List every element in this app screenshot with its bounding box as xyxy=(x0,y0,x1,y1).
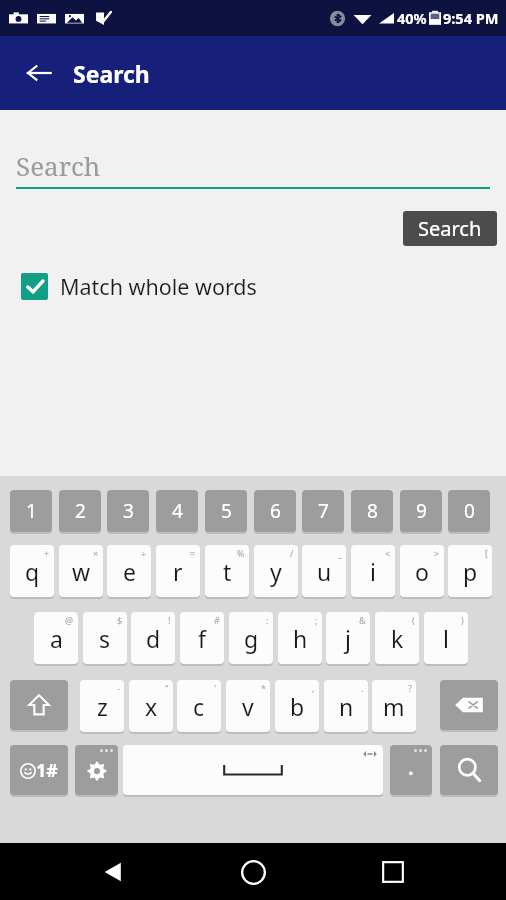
button[interactable]: y xyxy=(254,545,298,597)
button[interactable]: z xyxy=(80,680,124,732)
staticText: × xyxy=(93,547,99,559)
staticText: 7 xyxy=(318,498,329,524)
staticText: m xyxy=(383,691,405,722)
staticText: > xyxy=(434,547,440,559)
button[interactable]: Space xyxy=(123,745,383,795)
staticText: n xyxy=(339,691,354,722)
staticText: f xyxy=(198,623,206,654)
staticText: 40% xyxy=(397,8,427,28)
button[interactable]: d xyxy=(131,612,175,664)
staticText: < xyxy=(385,547,391,559)
staticText: Search xyxy=(418,215,482,242)
staticText: k xyxy=(391,623,404,654)
button[interactable]: Back xyxy=(16,50,62,96)
staticText: % xyxy=(237,547,245,559)
staticText: @ xyxy=(65,614,74,626)
staticText: 9 xyxy=(416,498,427,524)
staticText: = xyxy=(190,547,196,559)
button[interactable]: m xyxy=(372,680,416,732)
button[interactable]: 1 xyxy=(10,490,52,532)
button[interactable]: Home xyxy=(226,845,280,899)
button[interactable]: 2 xyxy=(59,490,101,532)
staticText: b xyxy=(290,691,305,722)
staticText: 8 xyxy=(367,498,378,524)
staticText: " xyxy=(165,682,169,694)
button[interactable]: r xyxy=(156,545,200,597)
staticText: * xyxy=(261,682,266,694)
button[interactable]: Search xyxy=(440,745,498,795)
button[interactable]: l xyxy=(424,612,468,664)
button[interactable]: Back xyxy=(86,845,140,899)
button[interactable]: o xyxy=(400,545,444,597)
button[interactable]: f xyxy=(180,612,224,664)
button[interactable]: 0 xyxy=(448,490,490,532)
staticText: i xyxy=(370,556,376,587)
staticText: 1# xyxy=(36,758,58,783)
button[interactable]: Recents xyxy=(366,845,420,899)
button[interactable]: Backspace xyxy=(440,680,498,730)
button[interactable]: c xyxy=(177,680,221,732)
staticText: x xyxy=(145,691,158,722)
button[interactable]: v xyxy=(226,680,270,732)
staticText: ( xyxy=(412,614,415,626)
button[interactable]: h xyxy=(278,612,322,664)
staticText: ) xyxy=(461,614,464,626)
button[interactable]: Emoji and symbols xyxy=(10,745,68,795)
staticText: e xyxy=(123,556,136,587)
button[interactable]: u xyxy=(302,545,346,597)
button[interactable]: Period xyxy=(390,745,432,795)
button[interactable]: 5 xyxy=(205,490,247,532)
button[interactable]: x xyxy=(129,680,173,732)
button[interactable]: p xyxy=(448,545,492,597)
staticText: 3 xyxy=(123,498,134,524)
staticText: ÷ xyxy=(141,547,147,559)
staticText: 5 xyxy=(221,498,232,524)
staticText: u xyxy=(317,556,332,587)
staticText: 4 xyxy=(172,498,183,524)
button[interactable]: Settings xyxy=(75,745,118,795)
staticText: [ xyxy=(485,547,488,559)
staticText: . xyxy=(361,682,364,694)
staticText: j xyxy=(345,623,351,654)
staticText: + xyxy=(44,547,50,559)
button[interactable]: q xyxy=(10,545,54,597)
button[interactable]: j xyxy=(326,612,370,664)
button[interactable]: k xyxy=(375,612,419,664)
button[interactable]: Search xyxy=(403,211,497,246)
staticText: s xyxy=(99,623,111,654)
button[interactable]: 6 xyxy=(254,490,296,532)
button[interactable]: 7 xyxy=(302,490,344,532)
button[interactable]: Search xyxy=(16,143,490,187)
button[interactable]: 9 xyxy=(400,490,442,532)
button[interactable]: Shift xyxy=(10,680,68,730)
staticText: y xyxy=(270,556,282,587)
staticText: g xyxy=(244,623,259,654)
button[interactable]: s xyxy=(83,612,127,664)
button[interactable]: g xyxy=(229,612,273,664)
staticText: Match whole words xyxy=(60,272,257,301)
staticText: l xyxy=(443,623,449,654)
staticText: 0 xyxy=(464,498,475,524)
staticText: _ xyxy=(338,547,342,559)
button[interactable]: i xyxy=(351,545,395,597)
staticText: c xyxy=(193,691,205,722)
staticText: a xyxy=(50,623,63,654)
staticText: ; xyxy=(315,614,318,626)
staticText: Search xyxy=(73,58,150,89)
button[interactable]: Match whole words xyxy=(21,272,490,301)
button[interactable]: a xyxy=(34,612,78,664)
staticText: ' xyxy=(214,682,217,694)
button[interactable]: t xyxy=(205,545,249,597)
button[interactable]: b xyxy=(275,680,319,732)
staticText: $ xyxy=(117,614,123,626)
button[interactable]: 4 xyxy=(156,490,198,532)
button[interactable]: w xyxy=(59,545,103,597)
button[interactable]: 8 xyxy=(351,490,393,532)
button[interactable]: e xyxy=(107,545,151,597)
staticText: q xyxy=(25,556,40,587)
staticText: r xyxy=(173,556,183,587)
button[interactable]: n xyxy=(324,680,368,732)
button[interactable]: 3 xyxy=(107,490,149,532)
staticText: 6 xyxy=(270,498,281,524)
staticText: o xyxy=(415,556,429,587)
